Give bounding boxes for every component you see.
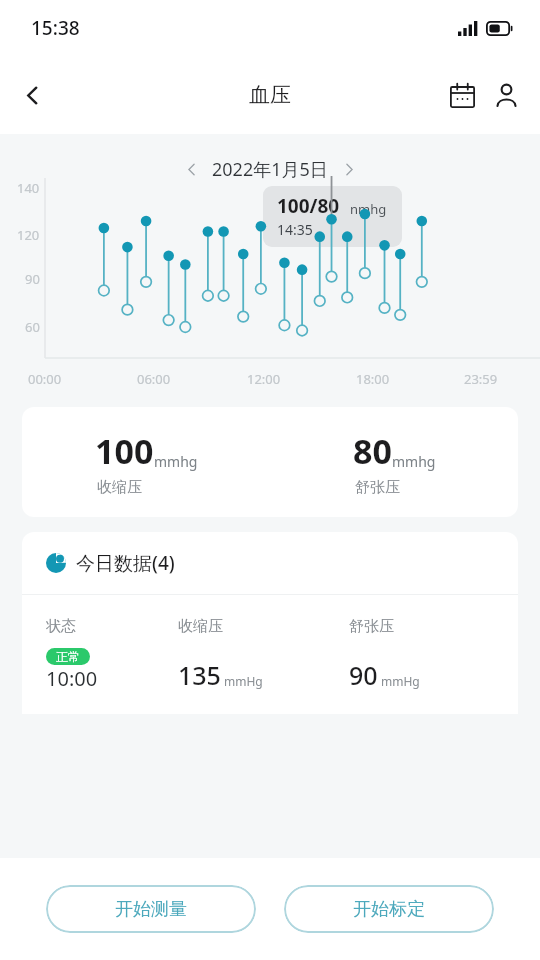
button[interactable]: 今日数据(4) xyxy=(22,532,518,594)
staticText: 135 xyxy=(178,658,221,692)
staticText: mmHg xyxy=(224,673,263,689)
staticText: 06:00 xyxy=(137,370,171,388)
staticText: 正常 xyxy=(56,649,80,664)
button[interactable]: Back xyxy=(8,71,56,119)
button[interactable]: Previous day xyxy=(174,152,208,186)
staticText: 90 xyxy=(25,270,40,288)
staticText: 23:59 xyxy=(464,370,498,388)
staticText: 舒张压 xyxy=(349,617,394,636)
staticText: 18:00 xyxy=(356,370,390,388)
staticText: 2022年1月5日 xyxy=(212,157,328,182)
button[interactable]: 开始标定 xyxy=(284,885,494,933)
button[interactable]: Calendar xyxy=(440,73,484,117)
staticText: 60 xyxy=(25,318,40,336)
staticText: 收缩压 xyxy=(97,478,142,497)
staticText: 120 xyxy=(17,226,40,244)
staticText: 开始测量 xyxy=(115,898,187,921)
staticText: 12:00 xyxy=(247,370,281,388)
button[interactable]: Profile xyxy=(484,73,528,117)
staticText: 100 xyxy=(95,428,154,474)
staticText: 今日数据(4) xyxy=(76,550,175,576)
staticText: 10:00 xyxy=(46,665,98,692)
staticText: 血压 xyxy=(249,82,291,108)
staticText: 收缩压 xyxy=(178,617,223,636)
button[interactable]: 开始测量 xyxy=(46,885,256,933)
staticText: mmHg xyxy=(381,673,420,689)
button[interactable]: 100 xyxy=(22,407,518,517)
staticText: mmhg xyxy=(154,452,198,471)
staticText: 状态 xyxy=(46,617,76,636)
staticText: 140 xyxy=(17,179,40,197)
staticText: 00:00 xyxy=(28,370,62,388)
button[interactable]: Next day xyxy=(332,152,366,186)
staticText: 15:38 xyxy=(31,15,80,41)
staticText: 80 xyxy=(353,428,392,474)
staticText: 14:35 xyxy=(277,220,313,239)
staticText: 开始标定 xyxy=(353,898,425,921)
staticText: nmhg xyxy=(350,200,387,218)
staticText: 舒张压 xyxy=(355,478,400,497)
button[interactable]: 正常 xyxy=(22,648,518,692)
staticText: 100/80 xyxy=(277,193,340,219)
staticText: 90 xyxy=(349,658,378,692)
staticText: mmhg xyxy=(392,452,436,471)
